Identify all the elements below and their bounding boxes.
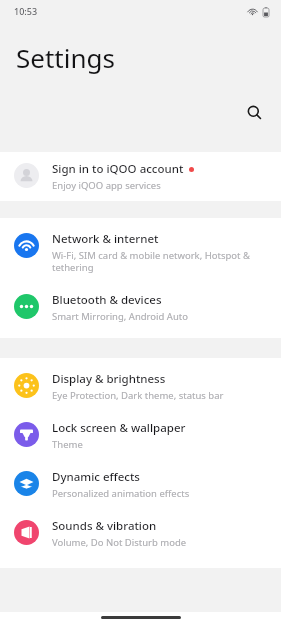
staticText: Personalized animation effects [52, 487, 190, 500]
staticText: Eye Protection, Dark theme, status bar [52, 389, 224, 402]
staticText: Volume, Do Not Disturb mode [52, 536, 187, 549]
button[interactable]: Bluetooth & devices [0, 283, 281, 332]
staticText: Sign in to iQOO account [52, 161, 184, 177]
staticText: Enjoy iQOO app services [52, 179, 161, 192]
button[interactable]: Sign in to iQOO account [0, 152, 281, 201]
staticText: Dynamic effects [52, 469, 140, 485]
button[interactable]: Dynamic effects [0, 460, 281, 509]
staticText: Settings [16, 40, 115, 75]
staticText: Wi-Fi, SIM card & mobile network, Hotspo… [52, 249, 267, 274]
staticText: Sounds & vibration [52, 518, 157, 534]
button[interactable]: Network & internet [0, 222, 281, 283]
staticText: Lock screen & wallpaper [52, 420, 186, 436]
staticText: Network & internet [52, 231, 159, 247]
staticText: Theme [52, 438, 83, 451]
staticText: Display & brightness [52, 371, 166, 387]
button[interactable]: Search [237, 95, 271, 129]
button[interactable]: Lock screen & wallpaper [0, 411, 281, 460]
button[interactable]: Sounds & vibration [0, 509, 281, 558]
button[interactable]: Display & brightness [0, 362, 281, 411]
staticText: 10:53 [14, 5, 38, 17]
staticText: Smart Mirroring, Android Auto [52, 310, 188, 323]
staticText: Bluetooth & devices [52, 292, 162, 308]
